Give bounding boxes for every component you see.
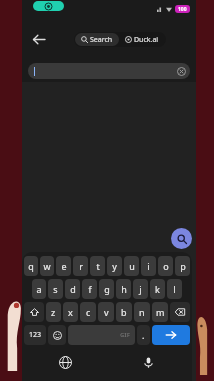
button[interactable]: h <box>116 279 131 299</box>
button[interactable]: n <box>134 302 150 322</box>
button[interactable]: s <box>48 279 63 299</box>
staticText: b <box>121 306 127 318</box>
button[interactable]: m <box>152 302 168 322</box>
button[interactable]: p <box>175 256 190 276</box>
button[interactable]: w <box>40 256 54 276</box>
button[interactable]: t <box>90 256 105 276</box>
button[interactable]: 123 <box>24 325 46 345</box>
staticText: u <box>129 260 135 272</box>
button[interactable]: Change language <box>24 347 107 377</box>
button[interactable]: u <box>124 256 139 276</box>
button[interactable]: Shift <box>24 302 44 322</box>
button[interactable]: a <box>32 279 46 299</box>
button[interactable]: . <box>137 325 150 345</box>
staticText: c <box>86 306 91 318</box>
staticText: i <box>147 260 150 272</box>
staticText: . <box>142 329 145 341</box>
staticText: a <box>36 283 42 295</box>
button[interactable]: q <box>24 256 38 276</box>
staticText: z <box>51 306 56 318</box>
button[interactable]: b <box>116 302 132 322</box>
button[interactable]: x <box>63 302 78 322</box>
button[interactable]: j <box>133 279 148 299</box>
button[interactable]: e <box>56 256 71 276</box>
staticText: o <box>163 260 169 272</box>
button[interactable]: r <box>73 256 88 276</box>
staticText: GIF <box>120 331 130 339</box>
button[interactable]: Clear <box>28 63 190 79</box>
button[interactable]: g <box>99 279 114 299</box>
staticText: f <box>88 283 92 295</box>
staticText: Duck.ai <box>134 35 159 45</box>
button[interactable]: Backspace <box>170 302 190 322</box>
button[interactable]: k <box>150 279 165 299</box>
button[interactable]: l <box>167 279 182 299</box>
button[interactable]: o <box>158 256 173 276</box>
staticText: d <box>70 283 76 295</box>
button[interactable]: z <box>46 302 61 322</box>
staticText: h <box>121 283 127 295</box>
button[interactable]: y <box>107 256 122 276</box>
staticText: t <box>96 260 100 272</box>
staticText: v <box>104 306 109 318</box>
button[interactable]: v <box>98 302 114 322</box>
staticText: j <box>139 283 142 295</box>
staticText: p <box>180 260 186 272</box>
button[interactable]: f <box>82 279 97 299</box>
staticText: w <box>43 260 51 272</box>
staticText: q <box>28 260 34 272</box>
staticText: x <box>68 306 73 318</box>
button[interactable]: c <box>80 302 96 322</box>
button[interactable]: Duck.ai <box>119 33 165 46</box>
staticText: s <box>53 283 58 295</box>
staticText: g <box>104 283 110 295</box>
staticText: 100 <box>178 6 187 13</box>
button[interactable]: Emoji <box>48 325 66 345</box>
staticText: y <box>112 260 117 272</box>
staticText: 123 <box>29 330 42 340</box>
button[interactable]: Back <box>26 27 50 51</box>
staticText: Search <box>90 35 113 45</box>
button[interactable]: Voice input <box>107 347 190 377</box>
button[interactable]: Search <box>171 228 192 249</box>
staticText: k <box>155 283 160 295</box>
button[interactable]: i <box>141 256 156 276</box>
button[interactable]: d <box>65 279 80 299</box>
staticText: e <box>61 260 67 272</box>
button[interactable]: Search <box>75 33 119 46</box>
staticText: m <box>156 306 165 318</box>
button[interactable]: Clear <box>176 66 186 76</box>
staticText: l <box>173 283 176 295</box>
button[interactable]: GIF <box>68 325 135 345</box>
button[interactable]: Enter <box>152 325 190 345</box>
staticText: r <box>79 260 83 272</box>
staticText: n <box>139 306 145 318</box>
